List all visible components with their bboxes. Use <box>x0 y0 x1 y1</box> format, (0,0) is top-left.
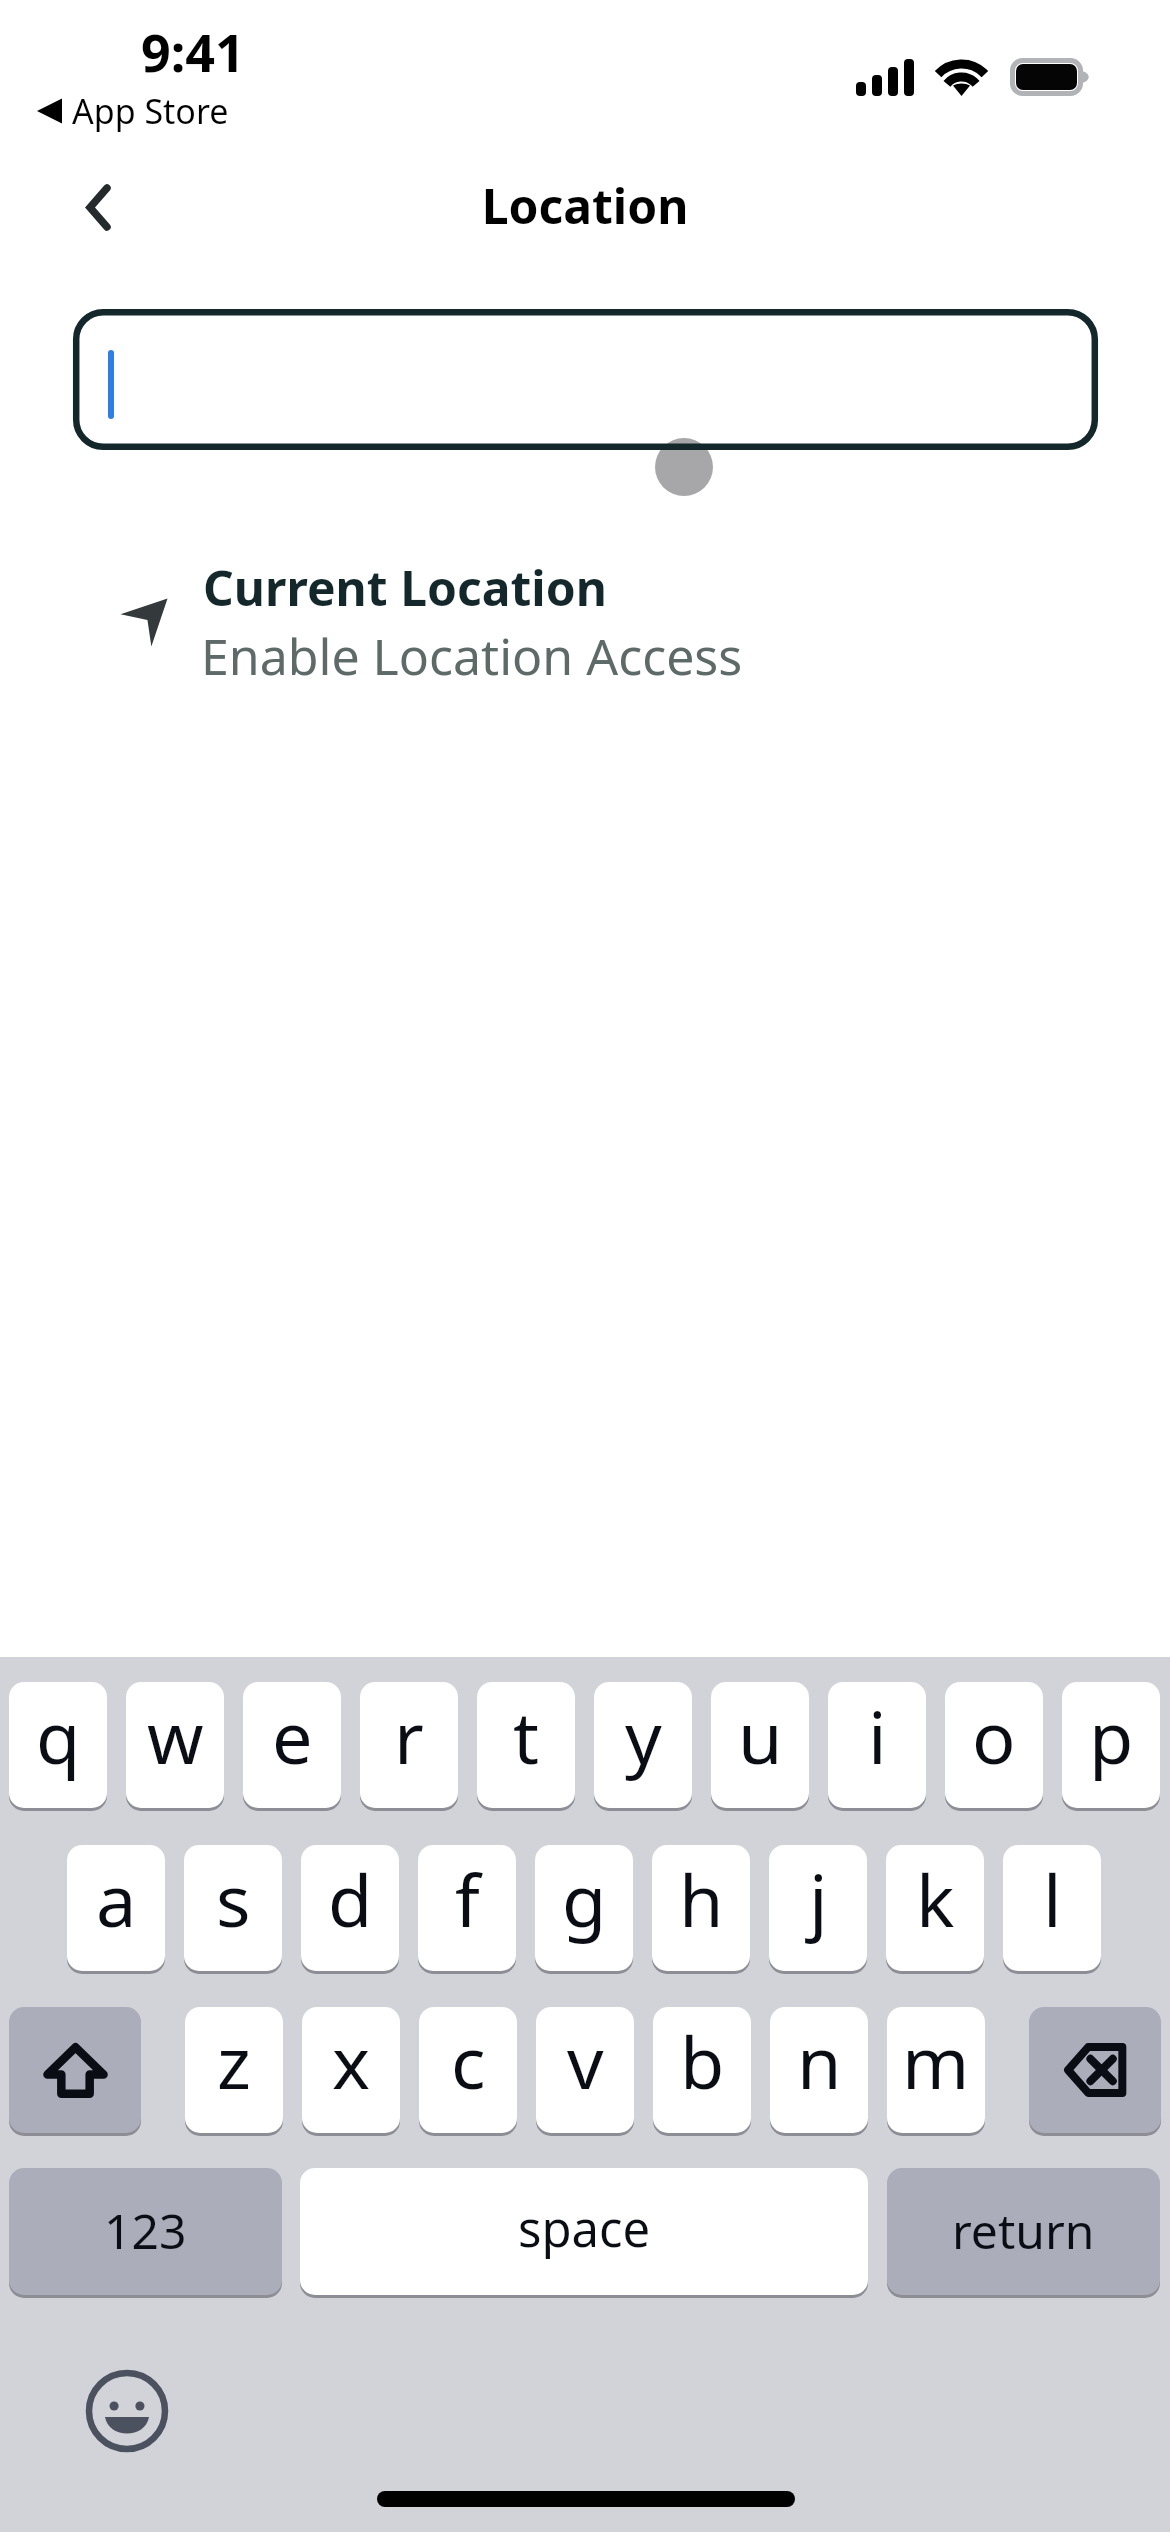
staticText: q <box>36 1687 81 1785</box>
button[interactable]: return <box>887 2168 1160 2298</box>
staticText: y <box>625 1687 662 1785</box>
button[interactable]: p <box>1062 1682 1160 1811</box>
staticText: f <box>455 1850 480 1948</box>
button[interactable]: Shift <box>9 2007 141 2136</box>
button[interactable]: f <box>418 1845 516 1974</box>
button[interactable]: g <box>535 1845 633 1974</box>
button[interactable]: Current Location <box>0 545 1170 705</box>
button[interactable]: s <box>184 1845 282 1974</box>
staticText: g <box>562 1850 607 1948</box>
staticText: k <box>916 1850 955 1948</box>
button[interactable]: Backspace <box>1029 2007 1161 2136</box>
staticText: j <box>809 1850 828 1948</box>
button[interactable]: t <box>477 1682 575 1811</box>
button[interactable]: o <box>945 1682 1043 1811</box>
staticText: h <box>679 1850 724 1948</box>
staticText: Location <box>0 173 1170 238</box>
staticText: x <box>332 2012 371 2110</box>
button[interactable]: v <box>536 2007 634 2136</box>
button[interactable]: l <box>1003 1845 1101 1974</box>
button[interactable]: q <box>9 1682 107 1811</box>
button[interactable]: m <box>887 2007 985 2136</box>
staticText: p <box>1089 1687 1134 1785</box>
button[interactable]: 123 <box>9 2168 282 2298</box>
staticText: 123 <box>104 2198 187 2263</box>
staticText: v <box>567 2012 604 2110</box>
button[interactable]: b <box>653 2007 751 2136</box>
button[interactable]: n <box>770 2007 868 2136</box>
button[interactable]: w <box>126 1682 224 1811</box>
button[interactable]: r <box>360 1682 458 1811</box>
staticText: d <box>328 1850 373 1948</box>
button[interactable]: space <box>300 2168 868 2298</box>
staticText: i <box>868 1687 887 1785</box>
button[interactable]: j <box>769 1845 867 1974</box>
staticText: l <box>1043 1850 1062 1948</box>
staticText: z <box>217 2012 251 2110</box>
staticText: c <box>451 2012 486 2110</box>
staticText: t <box>513 1687 539 1785</box>
staticText: App Store <box>72 88 229 134</box>
staticText: a <box>96 1850 137 1948</box>
staticText: return <box>952 2198 1095 2263</box>
button[interactable]: App Store <box>37 88 232 136</box>
staticText: r <box>394 1687 424 1785</box>
staticText: s <box>216 1850 251 1948</box>
button[interactable]: Emoji keyboard <box>85 2369 169 2453</box>
button[interactable]: u <box>711 1682 809 1811</box>
button[interactable]: d <box>301 1845 399 1974</box>
button[interactable] <box>73 309 1098 450</box>
button[interactable]: a <box>67 1845 165 1974</box>
staticText: w <box>147 1687 204 1785</box>
button[interactable]: y <box>594 1682 692 1811</box>
button[interactable]: z <box>185 2007 283 2136</box>
button[interactable]: x <box>302 2007 400 2136</box>
staticText: b <box>680 2012 725 2110</box>
button[interactable]: e <box>243 1682 341 1811</box>
button[interactable]: Back <box>66 168 136 248</box>
staticText: e <box>272 1687 313 1785</box>
staticText: o <box>972 1687 1016 1785</box>
button[interactable]: k <box>886 1845 984 1974</box>
staticText: 9:41 <box>141 16 245 87</box>
staticText: m <box>902 2012 970 2110</box>
staticText: space <box>518 2195 651 2262</box>
button[interactable]: c <box>419 2007 517 2136</box>
button[interactable]: h <box>652 1845 750 1974</box>
button[interactable]: i <box>828 1682 926 1811</box>
staticText: Current Location <box>203 555 607 620</box>
staticText: n <box>797 2012 842 2110</box>
staticText: Enable Location Access <box>201 622 743 690</box>
staticText: u <box>738 1687 783 1785</box>
